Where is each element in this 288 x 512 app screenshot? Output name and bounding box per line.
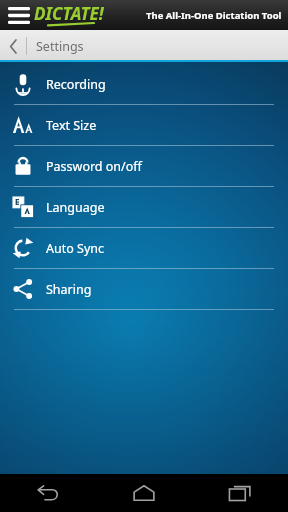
button[interactable]: Back — [0, 474, 96, 512]
staticText: Sharing — [46, 281, 92, 298]
button[interactable]: Sharing — [0, 269, 288, 309]
button[interactable]: Text Size — [0, 105, 288, 145]
button[interactable]: Auto Sync — [0, 228, 288, 268]
staticText: DICTATE! — [34, 2, 104, 25]
button[interactable]: DICTATE! — [34, 2, 104, 28]
button[interactable]: Recording — [0, 64, 288, 104]
staticText: Text Size — [46, 117, 97, 134]
button[interactable]: Language — [0, 187, 288, 227]
staticText: Password on/off — [46, 158, 142, 175]
staticText: Auto Sync — [46, 240, 105, 257]
button[interactable]: Recent apps — [192, 474, 288, 512]
staticText: Recording — [46, 76, 106, 93]
staticText: The All-In-One Dictation Tool — [146, 9, 282, 22]
staticText: Settings — [36, 38, 84, 55]
button[interactable]: Password on/off — [0, 146, 288, 186]
button[interactable]: Menu — [4, 0, 34, 30]
button[interactable]: Back — [0, 30, 26, 62]
staticText: Language — [46, 199, 105, 216]
button[interactable]: Home — [96, 474, 192, 512]
